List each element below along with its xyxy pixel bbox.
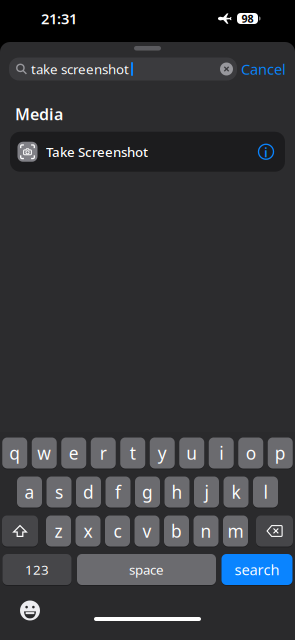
staticText: c — [113, 519, 121, 542]
button[interactable]: Shift — [2, 515, 38, 546]
staticText: h — [171, 480, 182, 503]
staticText: m — [227, 519, 243, 542]
staticText: e — [69, 441, 79, 464]
button[interactable]: Clear text — [220, 62, 233, 75]
button[interactable]: search — [221, 554, 292, 585]
button[interactable]: l — [253, 476, 278, 507]
staticText: x — [83, 519, 92, 542]
staticText: v — [142, 519, 151, 542]
button[interactable]: Take Screenshot — [10, 132, 285, 172]
staticText: q — [9, 441, 20, 464]
button[interactable]: t — [120, 437, 145, 468]
button[interactable]: u — [179, 437, 204, 468]
button[interactable]: h — [164, 476, 189, 507]
button[interactable]: a — [17, 476, 42, 507]
staticText: take screenshot — [31, 60, 129, 78]
staticText: z — [54, 519, 62, 542]
staticText: i — [219, 441, 223, 464]
staticText: 21:31 — [41, 9, 77, 28]
button[interactable]: g — [135, 476, 160, 507]
staticText: a — [24, 480, 34, 503]
button[interactable]: Delete — [256, 515, 293, 546]
staticText: r — [100, 441, 107, 464]
button[interactable]: Emoji — [20, 600, 40, 620]
button[interactable]: y — [150, 437, 175, 468]
staticText: f — [115, 480, 121, 503]
staticText: 98 — [241, 11, 253, 26]
staticText: 123 — [25, 561, 49, 578]
staticText: Take Screenshot — [46, 143, 148, 161]
staticText: j — [204, 480, 208, 503]
staticText: g — [142, 480, 153, 503]
staticText: search — [234, 560, 279, 579]
staticText: n — [200, 519, 211, 542]
staticText: t — [130, 441, 136, 464]
button[interactable]: q — [2, 437, 27, 468]
button[interactable]: w — [32, 437, 57, 468]
staticText: k — [231, 480, 240, 503]
button[interactable]: x — [75, 515, 100, 546]
button[interactable]: space — [77, 554, 216, 585]
button[interactable]: r — [91, 437, 116, 468]
button[interactable]: d — [76, 476, 101, 507]
button[interactable]: i — [209, 437, 234, 468]
staticText: y — [158, 441, 167, 464]
staticText: o — [246, 441, 256, 464]
staticText: space — [129, 561, 164, 578]
button[interactable]: 123 — [2, 554, 71, 585]
button[interactable]: Cancel — [241, 59, 286, 79]
button[interactable]: e — [61, 437, 86, 468]
button[interactable]: j — [194, 476, 219, 507]
button[interactable]: o — [238, 437, 263, 468]
button[interactable]: s — [46, 476, 71, 507]
staticText: i — [264, 143, 268, 161]
staticText: Cancel — [241, 59, 286, 79]
staticText: d — [83, 480, 94, 503]
button[interactable]: b — [164, 515, 189, 546]
staticText: b — [171, 519, 182, 542]
button[interactable]: c — [105, 515, 130, 546]
button[interactable]: f — [105, 476, 130, 507]
button[interactable]: k — [223, 476, 248, 507]
staticText: u — [186, 441, 197, 464]
button[interactable]: p — [268, 437, 293, 468]
staticText: s — [55, 480, 63, 503]
button[interactable]: m — [223, 515, 248, 546]
button[interactable]: z — [46, 515, 71, 546]
staticText: Media — [15, 103, 63, 125]
button[interactable]: Show details — [258, 144, 274, 160]
button[interactable]: n — [193, 515, 218, 546]
button[interactable]: v — [134, 515, 159, 546]
staticText: p — [275, 441, 286, 464]
staticText: w — [37, 441, 51, 464]
staticText: l — [263, 480, 267, 503]
